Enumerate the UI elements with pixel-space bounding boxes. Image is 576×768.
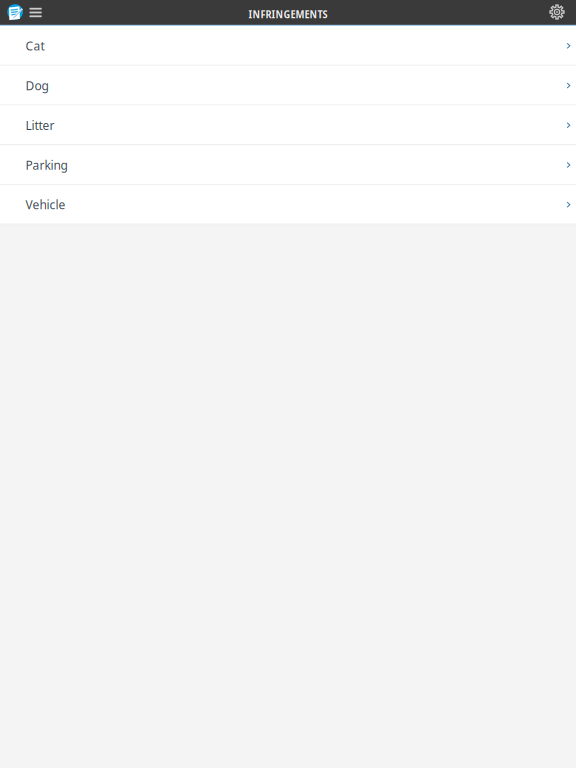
staticText: INFRINGEMENTS bbox=[248, 7, 327, 21]
staticText: Dog bbox=[25, 78, 48, 93]
button[interactable]: Litter bbox=[0, 105, 576, 145]
staticText: Litter bbox=[25, 117, 54, 133]
button[interactable]: Dog bbox=[0, 66, 576, 105]
button[interactable]: Vehicle bbox=[0, 185, 576, 224]
staticText: Vehicle bbox=[25, 197, 65, 213]
button[interactable]: Parking bbox=[0, 145, 576, 185]
button[interactable]: Settings bbox=[546, 0, 568, 24]
button[interactable]: Menu bbox=[25, 0, 47, 24]
staticText: Cat bbox=[25, 38, 44, 54]
staticText: Parking bbox=[25, 157, 67, 173]
button[interactable]: Cat bbox=[0, 26, 576, 66]
button[interactable]: App bbox=[6, 0, 25, 24]
